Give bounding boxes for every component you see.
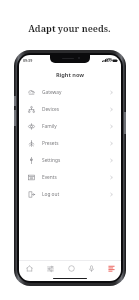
- button[interactable]: Menu: [101, 261, 121, 275]
- button[interactable]: Status: [61, 261, 81, 275]
- staticText: Family: [42, 123, 110, 130]
- button[interactable]: Home: [19, 261, 40, 275]
- staticText: Settings: [42, 157, 110, 164]
- button[interactable]: Presets: [19, 135, 121, 152]
- staticText: Events: [42, 174, 110, 181]
- button[interactable]: Voice: [81, 261, 101, 275]
- button[interactable]: Settings: [19, 152, 121, 169]
- button[interactable]: Adjust: [40, 261, 61, 275]
- button[interactable]: Family: [19, 118, 121, 135]
- staticText: 09:39: [23, 58, 33, 63]
- staticText: Right now: [19, 71, 121, 79]
- staticText: Gateway: [42, 89, 110, 96]
- staticText: Log out: [42, 191, 110, 198]
- button[interactable]: Events: [19, 169, 121, 186]
- staticText: Presets: [42, 140, 110, 147]
- button[interactable]: Log out: [19, 186, 121, 203]
- button[interactable]: Gateway: [19, 84, 121, 101]
- staticText: Devices: [42, 106, 110, 113]
- button[interactable]: Devices: [19, 101, 121, 118]
- staticText: Adapt your needs.: [0, 22, 139, 34]
